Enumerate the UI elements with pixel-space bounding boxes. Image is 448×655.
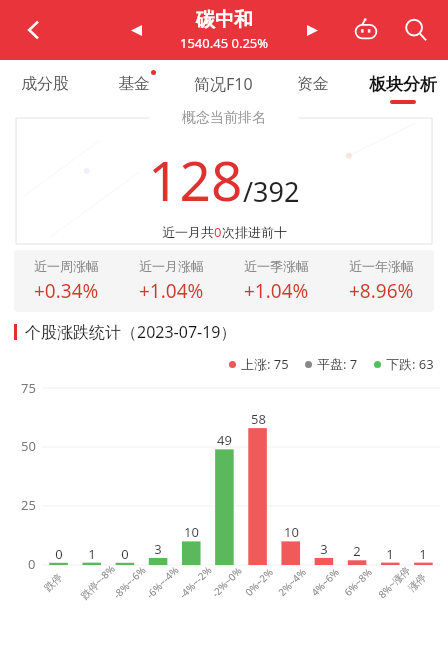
staticText: 跌停~-8% — [77, 562, 118, 602]
staticText: 0 — [28, 555, 36, 573]
button[interactable]: 近一年涨幅 — [329, 250, 434, 312]
staticText: 3 — [154, 540, 162, 558]
staticText: 75 — [21, 379, 36, 397]
staticText: 近一月涨幅 — [139, 258, 204, 274]
staticText: 碳中和 — [196, 8, 253, 32]
staticText: 涨停 — [405, 571, 429, 594]
button[interactable]: 近一月涨幅 — [119, 250, 224, 312]
staticText: 资金 — [297, 74, 329, 94]
staticText: 3 — [320, 540, 328, 558]
button[interactable]: 成分股 — [0, 60, 89, 108]
staticText: +0.34% — [34, 278, 99, 304]
staticText: 个股涨跌统计（2023-07-19） — [25, 321, 237, 343]
staticText: 近一季涨幅 — [244, 258, 309, 274]
button[interactable]: Assistant — [346, 10, 386, 50]
button[interactable]: 近一季涨幅 — [224, 250, 329, 312]
staticText: 10 — [284, 523, 299, 541]
staticText: -8%~-6% — [110, 563, 149, 601]
button[interactable]: 板块分析 — [358, 60, 448, 108]
staticText: 1 — [419, 545, 427, 563]
staticText: 25 — [21, 496, 36, 514]
staticText: 下跌: 63 — [386, 355, 434, 373]
button[interactable]: 基金 — [89, 60, 178, 108]
staticText: 概念当前排名 — [182, 109, 266, 127]
staticText: 6%~8% — [341, 565, 375, 599]
staticText: 成分股 — [21, 74, 69, 94]
staticText: 近一年涨幅 — [349, 258, 414, 274]
staticText: 4%~6% — [308, 565, 342, 599]
staticText: 0%~2% — [242, 565, 276, 599]
staticText: 次排进前十 — [222, 224, 287, 240]
button[interactable]: Next — [294, 12, 330, 48]
staticText: 8%~涨停 — [375, 563, 413, 601]
staticText: 基金 — [118, 74, 150, 94]
staticText: /392 — [243, 173, 300, 210]
staticText: 近一周涨幅 — [34, 258, 99, 274]
button[interactable]: 近一周涨幅 — [14, 250, 119, 312]
button[interactable]: 简况F10 — [178, 60, 268, 108]
staticText: 平盘: 7 — [317, 355, 358, 373]
button[interactable]: Search — [396, 10, 436, 50]
staticText: 板块分析 — [369, 74, 437, 95]
button[interactable]: 资金 — [268, 60, 358, 108]
staticText: -4%~-2% — [176, 563, 215, 601]
staticText: +1.04% — [139, 278, 204, 304]
staticText: 50 — [21, 437, 36, 455]
staticText: 近一月共 — [162, 224, 214, 240]
staticText: 1 — [88, 545, 96, 563]
staticText: 1 — [386, 545, 394, 563]
staticText: 0 — [121, 545, 129, 563]
staticText: -2%~0% — [208, 564, 245, 600]
staticText: 跌停 — [41, 571, 65, 594]
button[interactable]: Previous — [118, 12, 154, 48]
staticText: 2%~4% — [275, 565, 309, 599]
staticText: 58 — [251, 410, 266, 428]
staticText: -6%~-4% — [143, 563, 182, 601]
staticText: 0 — [55, 545, 63, 563]
staticText: 2 — [353, 542, 361, 560]
staticText: 10 — [184, 523, 199, 541]
button[interactable]: 128 — [16, 118, 432, 244]
staticText: 上涨: 75 — [241, 355, 289, 373]
staticText: +1.04% — [244, 278, 309, 304]
staticText: 128 — [148, 142, 243, 217]
staticText: 简况F10 — [194, 73, 253, 95]
staticText: 1540.45 0.25% — [180, 34, 269, 52]
staticText: +8.96% — [349, 278, 414, 304]
button[interactable]: Back — [12, 8, 56, 52]
staticText: 49 — [217, 431, 232, 449]
staticText: 0 — [214, 223, 222, 241]
